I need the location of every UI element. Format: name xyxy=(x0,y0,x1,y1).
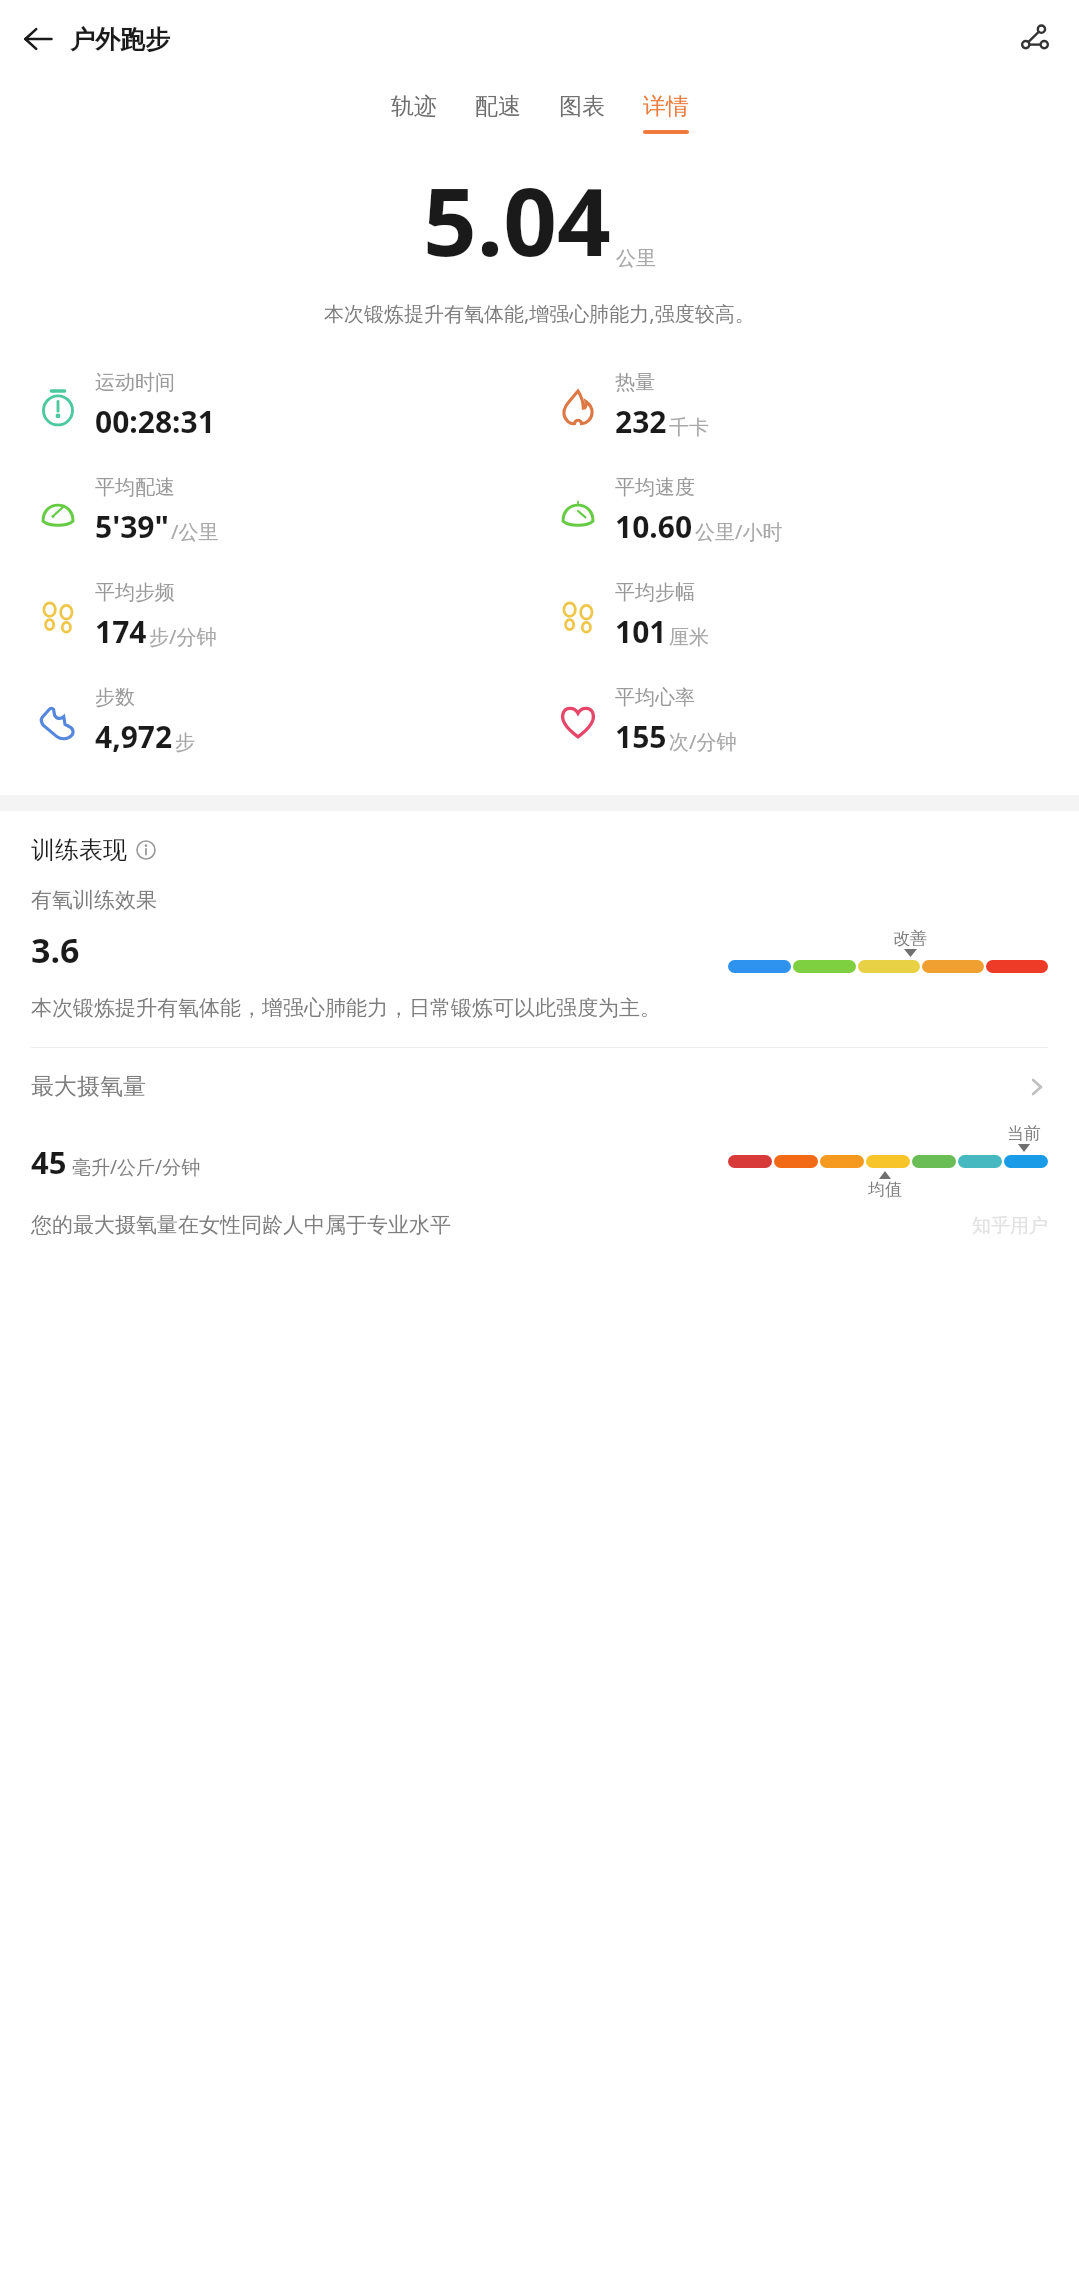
button[interactable]: 热量 xyxy=(551,353,1079,458)
staticText: 平均步幅 xyxy=(615,580,695,605)
staticText: 本次锻炼提升有氧体能，增强心肺能力，日常锻炼可以此强度为主。 xyxy=(31,995,661,1021)
staticText: 45 xyxy=(31,1141,67,1183)
staticText: 5'39" xyxy=(95,506,169,547)
staticText: 步/分钟 xyxy=(149,623,217,650)
staticText: 5.04 xyxy=(423,156,611,284)
staticText: 10.60 xyxy=(615,506,693,547)
staticText: 改善 xyxy=(893,928,927,949)
staticText: 公里 xyxy=(616,246,656,271)
staticText: 当前 xyxy=(1007,1123,1041,1144)
staticText: 您的最大摄氧量在女性同龄人中属于专业水平 xyxy=(31,1212,451,1238)
button[interactable]: 平均心率 xyxy=(551,668,1079,773)
staticText: 平均心率 xyxy=(615,685,695,710)
staticText: 图表 xyxy=(559,92,605,121)
staticText: 次/分钟 xyxy=(669,728,737,755)
button[interactable]: 平均速度 xyxy=(551,458,1079,563)
button[interactable]: 图表 xyxy=(559,92,605,134)
staticText: 配速 xyxy=(475,92,521,121)
button[interactable]: 平均配速 xyxy=(31,458,539,563)
staticText: 4,972 xyxy=(95,716,173,757)
staticText: /公里 xyxy=(171,518,219,545)
button[interactable]: Back xyxy=(12,13,64,65)
other: More xyxy=(1026,1076,1048,1098)
staticText: 3.6 xyxy=(31,927,80,973)
button[interactable]: 详情 xyxy=(643,92,689,134)
staticText: 101 xyxy=(615,611,667,652)
staticText: 155 xyxy=(615,716,667,757)
staticText: 毫升/公斤/分钟 xyxy=(72,1154,201,1180)
staticText: 厘米 xyxy=(669,625,709,650)
staticText: 本次锻炼提升有氧体能,增强心肺能力,强度较高。 xyxy=(324,300,755,327)
button[interactable]: 训练表现 xyxy=(31,835,156,865)
staticText: 有氧训练效果 xyxy=(31,887,157,913)
staticText: 00:28:31 xyxy=(95,401,215,442)
staticText: 训练表现 xyxy=(31,835,127,865)
staticText: 公里/小时 xyxy=(695,518,783,545)
staticText: 热量 xyxy=(615,370,655,395)
staticText: 174 xyxy=(95,611,147,652)
staticText: 运动时间 xyxy=(95,370,175,395)
staticText: 步 xyxy=(175,730,195,755)
staticText: 最大摄氧量 xyxy=(31,1072,146,1101)
staticText: 详情 xyxy=(643,92,689,121)
staticText: 232 xyxy=(615,401,667,442)
button[interactable]: Share xyxy=(1009,13,1061,65)
staticText: 轨迹 xyxy=(391,92,437,121)
button[interactable]: 配速 xyxy=(475,92,521,134)
staticText: 户外跑步 xyxy=(70,24,170,55)
button[interactable]: 平均步幅 xyxy=(551,563,1079,668)
button[interactable]: 轨迹 xyxy=(391,92,437,134)
staticText: 平均步频 xyxy=(95,580,175,605)
button[interactable]: 最大摄氧量 xyxy=(31,1072,1048,1101)
button[interactable]: 平均步频 xyxy=(31,563,539,668)
staticText: 平均配速 xyxy=(95,475,175,500)
button[interactable]: 运动时间 xyxy=(31,353,539,458)
staticText: 知乎用户 xyxy=(972,1214,1048,1238)
staticText: 均值 xyxy=(868,1179,902,1200)
staticText: 步数 xyxy=(95,685,135,710)
button[interactable]: 步数 xyxy=(31,668,539,773)
staticText: 千卡 xyxy=(669,415,709,440)
staticText: 平均速度 xyxy=(615,475,695,500)
